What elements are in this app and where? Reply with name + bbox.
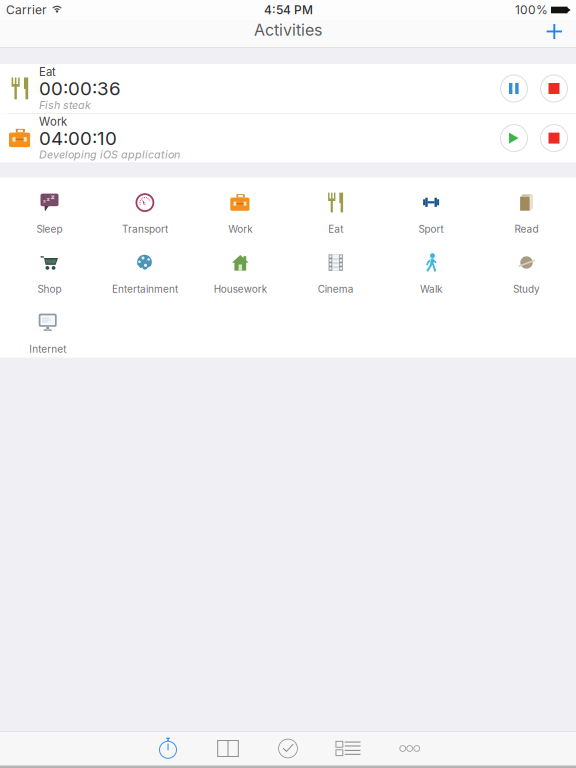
staticText: Cinema (318, 283, 354, 295)
button[interactable]: Eat (288, 178, 383, 238)
button[interactable]: Timers (138, 731, 198, 765)
button[interactable]: Stop (534, 116, 574, 160)
button[interactable]: Read (479, 178, 574, 238)
button[interactable]: Transport (97, 178, 193, 238)
button[interactable]: Stop (534, 66, 574, 110)
staticText: Developing iOS application (39, 148, 180, 161)
staticText: 04:00:10 (39, 127, 117, 149)
button[interactable]: Sport (383, 178, 479, 238)
button[interactable]: Goals (258, 731, 318, 765)
staticText: Eat (39, 65, 56, 79)
staticText: Activities (254, 20, 322, 40)
button[interactable]: Internet (0, 298, 95, 358)
button[interactable]: Shop (2, 238, 97, 298)
staticText: Study (513, 283, 540, 295)
staticText: 00:00:36 (39, 77, 121, 100)
staticText: Walk (420, 283, 442, 295)
staticText: Fish steak (39, 98, 91, 111)
staticText: Transport (122, 223, 168, 235)
button[interactable]: Study (479, 238, 574, 298)
staticText: Entertainment (112, 283, 178, 295)
button[interactable]: Work (193, 178, 288, 238)
staticText: Housework (214, 283, 267, 295)
staticText: 100% (515, 3, 548, 17)
staticText: Shop (37, 283, 61, 295)
button[interactable]: Journal (198, 731, 258, 765)
button[interactable]: Entertainment (97, 238, 193, 298)
button[interactable]: Sleep (2, 178, 97, 238)
button[interactable]: Cinema (288, 238, 383, 298)
button[interactable]: More (378, 731, 438, 765)
button[interactable]: Start (494, 116, 534, 160)
staticText: Eat (328, 223, 343, 235)
staticText: Read (514, 223, 538, 235)
button[interactable]: Housework (193, 238, 288, 298)
staticText: Sleep (36, 223, 62, 235)
staticText: 4:54 PM (264, 3, 313, 17)
staticText: Work (39, 115, 67, 128)
staticText: Carrier (6, 3, 47, 17)
button[interactable]: Add activity (533, 20, 576, 48)
staticText: Internet (29, 343, 66, 355)
staticText: Work (228, 223, 252, 235)
staticText: Sport (419, 223, 444, 235)
button[interactable]: Walk (383, 238, 479, 298)
button[interactable]: Reports (318, 731, 378, 765)
button[interactable]: Pause (494, 66, 534, 110)
